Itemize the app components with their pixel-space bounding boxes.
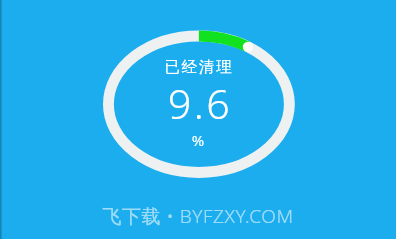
button[interactable]: Cleaning progress, 9.6 percent cleaned	[103, 31, 295, 178]
staticText: 已经清理	[1, 57, 396, 77]
staticText: 9.6	[2, 75, 396, 131]
staticText: 飞下载 • BYFZXY.COM	[0, 203, 396, 229]
staticText: %	[0, 130, 396, 150]
